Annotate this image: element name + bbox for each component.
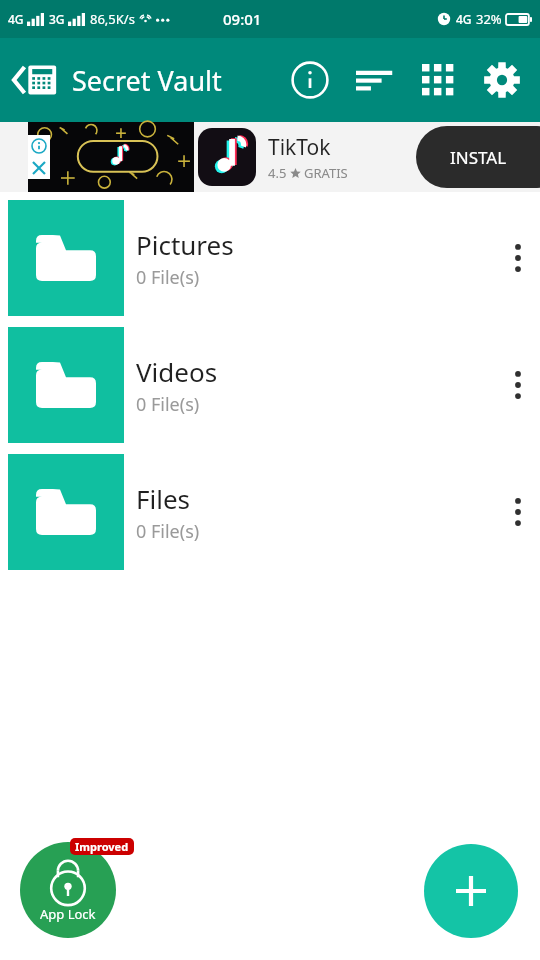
staticText: Videos — [136, 354, 218, 389]
staticText: 3G — [49, 11, 65, 27]
staticText: Pictures — [136, 227, 234, 262]
staticText: 4G — [456, 11, 472, 27]
button[interactable]: Grid view — [406, 48, 470, 112]
button[interactable]: Back — [10, 52, 62, 108]
staticText: 09:01 — [223, 9, 262, 29]
staticText: 4.5 — [268, 164, 287, 182]
button[interactable]: More options — [496, 327, 540, 443]
staticText: TikTok — [268, 133, 331, 162]
button[interactable]: Videos — [0, 327, 540, 443]
staticText: Secret Vault — [72, 62, 222, 99]
button[interactable]: INSTAL — [416, 126, 540, 188]
button[interactable]: More options — [496, 454, 540, 570]
staticText: 86,5K/s — [90, 10, 135, 28]
button[interactable]: TikTok — [0, 122, 540, 192]
button[interactable]: More options — [496, 200, 540, 316]
button[interactable]: Files — [0, 454, 540, 570]
button[interactable]: App Lock — [20, 842, 116, 938]
staticText: 0 File(s) — [136, 392, 200, 417]
staticText: GRATIS — [304, 164, 348, 182]
staticText: App Lock — [40, 905, 96, 923]
staticText: Improved — [75, 839, 129, 854]
staticText: 0 File(s) — [136, 265, 200, 290]
staticText: 4G — [8, 11, 24, 27]
button[interactable]: Info — [278, 48, 342, 112]
button[interactable]: Settings — [470, 48, 534, 112]
button[interactable]: Sort — [342, 48, 406, 112]
staticText: Files — [136, 481, 191, 516]
staticText: 32% — [476, 10, 502, 28]
button[interactable]: Pictures — [0, 200, 540, 316]
staticText: 0 File(s) — [136, 519, 200, 544]
staticText: INSTAL — [450, 146, 507, 169]
button[interactable]: Add — [424, 844, 518, 938]
